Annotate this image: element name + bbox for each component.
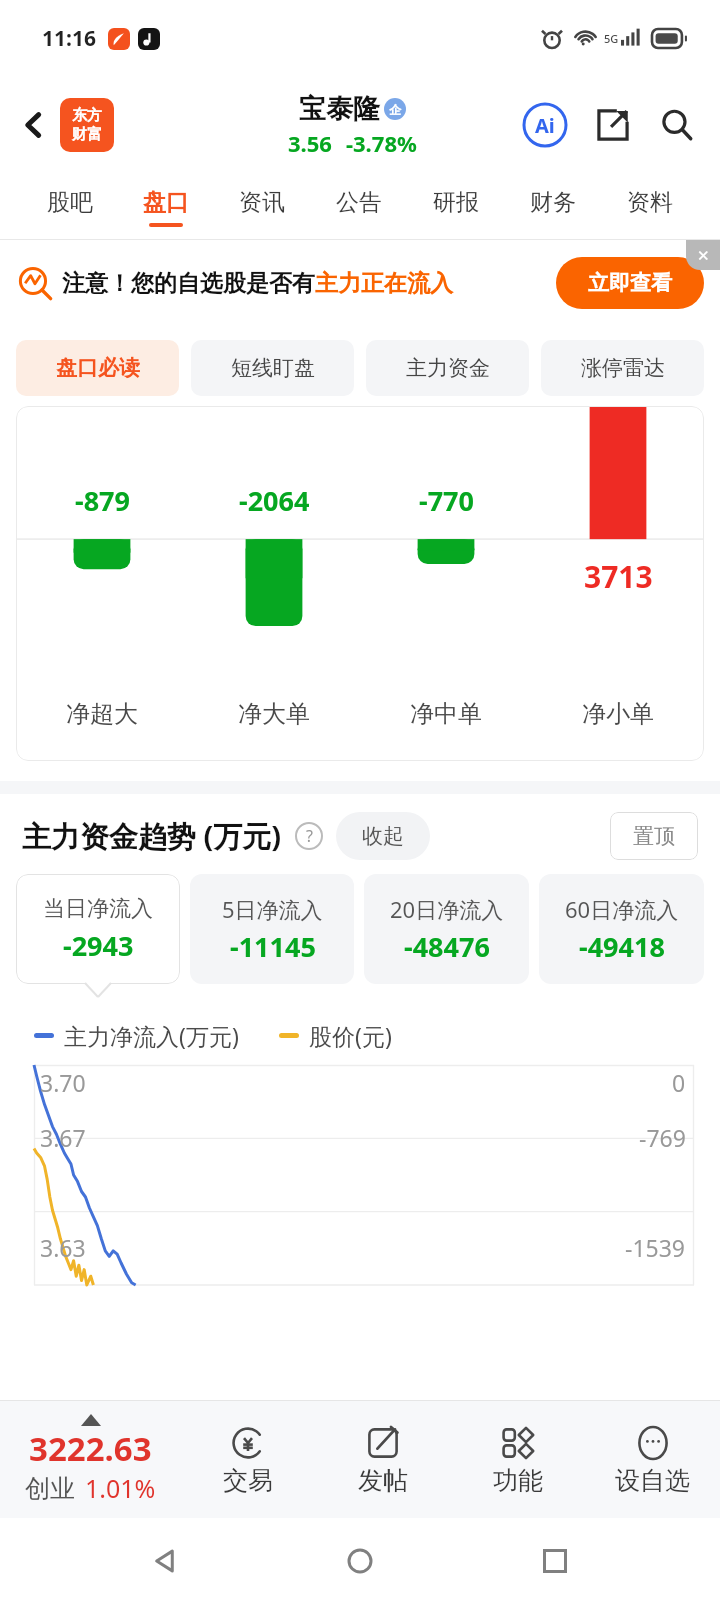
staticText: -11145 <box>230 928 316 965</box>
button[interactable]: Share <box>586 98 640 152</box>
staticText: 企 <box>389 102 401 117</box>
button[interactable]: 盘口 <box>118 174 214 240</box>
staticText: 净超大 <box>66 699 138 729</box>
staticText: -48476 <box>404 928 490 965</box>
button[interactable]: 公告 <box>310 174 407 240</box>
staticText: 3.56 <box>288 128 332 158</box>
staticText: -770 <box>419 482 474 519</box>
button[interactable]: 3222.63 <box>0 1400 181 1518</box>
staticText: 资料 <box>627 188 673 217</box>
staticText: 3.70 <box>40 1067 86 1098</box>
button[interactable]: 主力资金 <box>366 340 529 396</box>
button[interactable]: 置顶 <box>610 812 698 860</box>
staticText: -3.78% <box>346 128 417 158</box>
staticText: 1.01% <box>85 1471 156 1505</box>
button[interactable]: AI <box>518 98 572 152</box>
button[interactable]: 60日净流入 <box>539 874 704 984</box>
staticText: 60日净流入 <box>565 894 679 924</box>
staticText: 财富 <box>72 125 102 144</box>
staticText: -2943 <box>63 927 134 964</box>
button[interactable]: Search <box>650 98 704 152</box>
button[interactable]: 涨停雷达 <box>541 340 704 396</box>
staticText: 注意！您的自选股是否有 <box>62 269 315 298</box>
button[interactable]: Back <box>6 97 62 153</box>
staticText: 3713 <box>584 556 653 597</box>
button[interactable]: 3.70 <box>34 1065 694 1285</box>
staticText: -769 <box>639 1122 686 1153</box>
staticText: 净中单 <box>410 699 482 729</box>
staticText: 涨停雷达 <box>581 355 665 381</box>
button[interactable]: 资讯 <box>214 174 310 240</box>
staticText: ✕ <box>697 247 710 264</box>
staticText: 股吧 <box>47 188 93 217</box>
staticText: 发帖 <box>358 1465 408 1496</box>
button[interactable]: 盘口必读 <box>16 340 179 396</box>
staticText: 立即查看 <box>588 270 672 296</box>
staticText: 短线盯盘 <box>231 355 315 381</box>
staticText: -1539 <box>625 1232 686 1263</box>
button[interactable]: Recents <box>525 1531 585 1591</box>
staticText: -879 <box>75 482 130 519</box>
button[interactable]: 注意！您的自选股是否有 <box>18 240 704 326</box>
staticText: 宝泰隆 <box>299 92 380 126</box>
staticText: 主力资金趋势 (万元) <box>22 816 282 856</box>
staticText: -2064 <box>239 482 310 519</box>
staticText: 设自选 <box>615 1465 690 1496</box>
button[interactable]: 短线盯盘 <box>191 340 354 396</box>
staticText: Ai <box>535 112 555 139</box>
staticText: 功能 <box>493 1465 543 1496</box>
staticText: -49418 <box>579 928 665 965</box>
staticText: 公告 <box>336 188 382 217</box>
button[interactable]: East Money <box>60 98 114 152</box>
button[interactable]: 交易 <box>181 1400 315 1518</box>
staticText: 财务 <box>530 188 576 217</box>
button[interactable]: 功能 <box>450 1400 585 1518</box>
staticText: 当日净流入 <box>43 895 153 923</box>
staticText: ? <box>306 825 313 847</box>
button[interactable]: 立即查看 <box>556 257 704 309</box>
staticText: 研报 <box>433 188 479 217</box>
staticText: 5G <box>604 31 619 46</box>
staticText: 5日净流入 <box>222 894 323 924</box>
staticText: 东方 <box>72 106 102 125</box>
staticText: 主力净流入(万元) <box>64 1020 239 1051</box>
staticText: 净小单 <box>582 699 654 729</box>
staticText: 主力正在流入 <box>315 269 453 298</box>
staticText: 盘口必读 <box>56 355 140 381</box>
button[interactable]: Close <box>686 240 720 270</box>
staticText: 20日净流入 <box>390 894 504 924</box>
button[interactable]: Back <box>135 1531 195 1591</box>
staticText: 盘口 <box>143 188 189 217</box>
button[interactable]: Home <box>330 1531 390 1591</box>
button[interactable]: 资料 <box>601 174 698 240</box>
button[interactable]: 当日净流入 <box>16 874 180 984</box>
staticText: 股价(元) <box>309 1020 392 1051</box>
staticText: 交易 <box>223 1465 273 1496</box>
button[interactable]: 5日净流入 <box>190 874 354 984</box>
button[interactable]: 发帖 <box>315 1400 450 1518</box>
staticText: 资讯 <box>239 188 285 217</box>
staticText: 收起 <box>362 823 404 849</box>
staticText: 3222.63 <box>29 1426 152 1471</box>
staticText: 3.63 <box>40 1232 86 1263</box>
button[interactable]: -879 <box>16 406 704 761</box>
button[interactable]: 股吧 <box>22 174 118 240</box>
button[interactable]: 20日净流入 <box>364 874 529 984</box>
button[interactable]: 研报 <box>407 174 504 240</box>
staticText: 0 <box>672 1067 686 1098</box>
staticText: 净大单 <box>238 699 310 729</box>
button[interactable]: 收起 <box>336 812 430 860</box>
button[interactable]: 设自选 <box>585 1400 720 1518</box>
staticText: 主力资金 <box>406 355 490 381</box>
staticText: 创业 <box>25 1473 75 1504</box>
staticText: 11:16 <box>42 24 96 53</box>
staticText: 3.67 <box>40 1122 86 1153</box>
staticText: 置顶 <box>633 823 675 849</box>
button[interactable]: Help <box>292 819 326 853</box>
button[interactable]: 财务 <box>504 174 601 240</box>
